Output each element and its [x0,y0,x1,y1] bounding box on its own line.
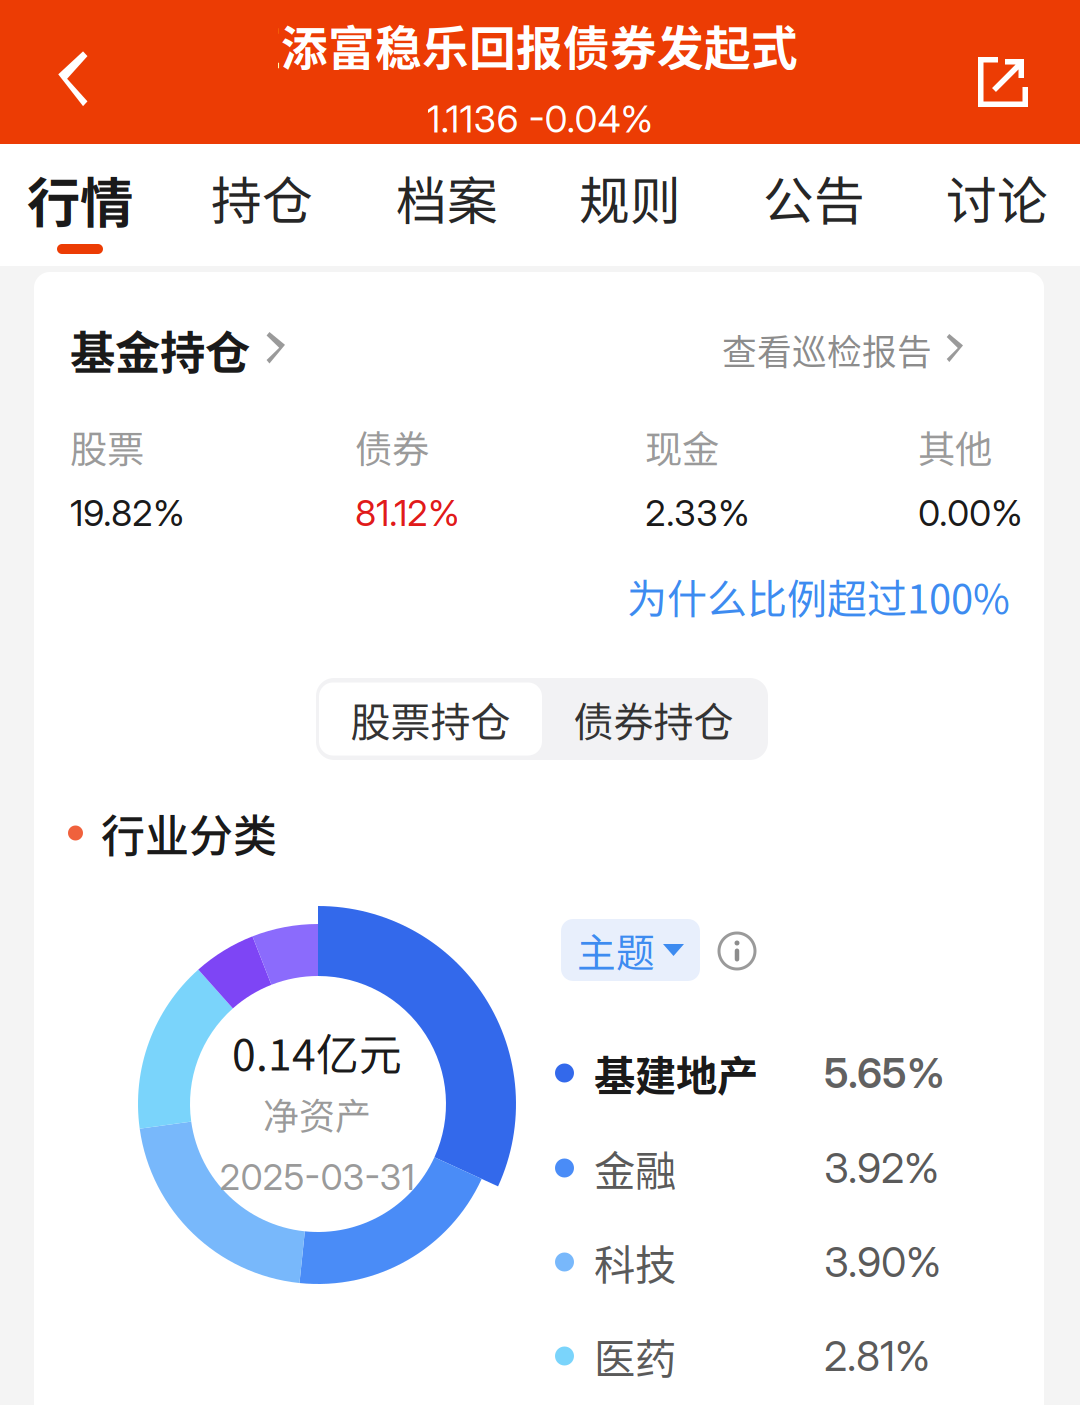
staticText: 债券持仓 [573,690,733,748]
staticText: 81.12% [355,491,460,535]
button[interactable]: 档案 [359,145,535,265]
staticText: 1.1136 -0.04% [426,96,653,142]
staticText: 净资产 [263,1088,371,1140]
staticText: 行业分类 [101,801,277,865]
staticText: 3.92% [824,1143,939,1193]
staticText: 主题 [577,922,655,978]
button[interactable]: 行情 [0,145,168,265]
staticText: 查看巡检报告 [722,325,932,375]
button[interactable]: 基建地产 [555,1027,995,1119]
staticText: 基建地产 [594,1043,758,1103]
staticText: 5.65% [824,1048,945,1098]
staticText: 债券 [355,420,429,474]
staticText: 2.81% [824,1331,930,1381]
staticText: 股票持仓 [350,690,510,748]
button[interactable]: 公告 [726,145,902,265]
button[interactable]: 债券持仓 [542,682,765,755]
button[interactable]: 股票持仓 [319,682,542,755]
button[interactable]: 主题 [561,919,700,981]
button[interactable]: 金融 [555,1122,995,1214]
staticText: 公告 [763,161,865,234]
button[interactable]: 科技 [555,1216,995,1308]
button[interactable]: Back [36,32,114,132]
staticText: 股票 [70,420,144,474]
staticText: 为什么比例超过100% [627,567,1010,625]
button[interactable]: 持仓 [174,145,350,265]
staticText: 金融 [594,1138,676,1198]
staticText: 3.90% [824,1237,941,1287]
button[interactable]: 为什么比例超过100% [627,567,1010,625]
staticText: 2.33% [645,491,750,535]
button[interactable]: 医药 [555,1310,995,1402]
button[interactable]: 讨论 [909,145,1080,265]
staticText: 19.82% [70,491,185,535]
staticText: 医药 [594,1326,676,1386]
button[interactable]: 规则 [542,145,718,265]
button[interactable]: 基金持仓 [70,317,289,383]
staticText: 持仓 [211,161,313,234]
staticText: 汇添富稳乐回报债券发起式 [234,11,798,79]
staticText: 2025-03-31 [219,1155,414,1199]
button[interactable]: Info [719,933,755,969]
staticText: 0.00% [918,491,1023,535]
staticText: 档案 [396,161,498,234]
staticText: 现金 [645,420,719,474]
staticText: 基金持仓 [70,317,250,383]
button[interactable]: Share [960,39,1046,125]
staticText: 0.14亿元 [232,1021,402,1083]
staticText: 规则 [579,161,681,234]
staticText: 其他 [918,420,992,474]
button[interactable]: 查看巡检报告 [722,325,967,375]
staticText: 科技 [594,1232,676,1292]
staticText: 讨论 [946,161,1048,234]
staticText: 行情 [27,161,133,238]
